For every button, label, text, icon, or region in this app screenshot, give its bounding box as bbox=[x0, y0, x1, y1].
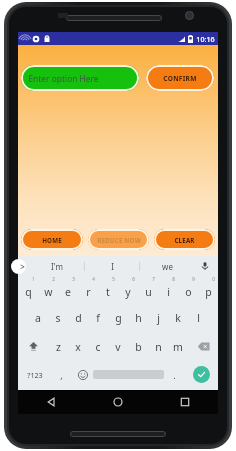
staticText: e bbox=[65, 285, 71, 299]
staticText: y bbox=[125, 285, 131, 299]
button[interactable]: b bbox=[128, 332, 148, 361]
staticText: g bbox=[115, 311, 122, 325]
button[interactable]: y bbox=[118, 276, 138, 304]
staticText: CONFIRM bbox=[163, 74, 197, 83]
staticText: w bbox=[44, 285, 53, 299]
button[interactable]: REDUCE NOW bbox=[88, 229, 149, 250]
staticText: 2 bbox=[52, 276, 55, 282]
staticText: x bbox=[75, 340, 81, 354]
button[interactable]: CLEAR bbox=[154, 229, 215, 250]
staticText: u bbox=[145, 285, 152, 299]
staticText: HOME bbox=[42, 236, 62, 244]
staticText: CLEAR bbox=[174, 236, 195, 244]
staticText: h bbox=[135, 311, 142, 325]
button[interactable]: h bbox=[128, 304, 148, 332]
button[interactable]: Shift bbox=[18, 332, 48, 361]
button[interactable]: r bbox=[78, 276, 98, 304]
staticText: , bbox=[60, 369, 63, 381]
button[interactable]: Voice input bbox=[194, 256, 216, 276]
staticText: z bbox=[56, 340, 61, 354]
staticText: p bbox=[205, 285, 212, 299]
button[interactable]: we bbox=[140, 256, 194, 276]
staticText: 1 bbox=[32, 276, 35, 282]
button[interactable]: f bbox=[88, 304, 108, 332]
button[interactable]: v bbox=[108, 332, 128, 361]
button[interactable]: n bbox=[148, 332, 168, 361]
staticText: b bbox=[135, 340, 142, 354]
button[interactable]: HOME bbox=[21, 229, 83, 250]
button[interactable]: z bbox=[48, 332, 68, 361]
staticText: t bbox=[106, 285, 110, 299]
staticText: d bbox=[75, 311, 82, 325]
staticText: I bbox=[111, 261, 114, 272]
button[interactable]: Recents bbox=[151, 390, 218, 414]
staticText: r bbox=[86, 285, 91, 299]
button[interactable]: c bbox=[88, 332, 108, 361]
button[interactable]: d bbox=[68, 304, 88, 332]
button[interactable]: Space bbox=[93, 366, 164, 383]
staticText: c bbox=[95, 340, 101, 354]
staticText: Enter option Here bbox=[28, 73, 99, 84]
staticText: ?123 bbox=[27, 370, 43, 380]
staticText: 6 bbox=[132, 276, 135, 282]
button[interactable]: j bbox=[148, 304, 168, 332]
staticText: I'm bbox=[51, 261, 63, 272]
button[interactable]: Back bbox=[18, 390, 84, 414]
staticText: 7 bbox=[152, 276, 155, 282]
button[interactable]: ?123 bbox=[18, 361, 51, 388]
button[interactable]: w bbox=[38, 276, 58, 304]
staticText: 5 bbox=[112, 276, 115, 282]
button[interactable]: l bbox=[188, 304, 208, 332]
staticText: 9 bbox=[192, 276, 195, 282]
button[interactable]: , bbox=[51, 361, 72, 388]
staticText: > bbox=[20, 261, 25, 272]
staticText: s bbox=[55, 311, 61, 325]
button[interactable]: a bbox=[28, 304, 48, 332]
button[interactable]: . bbox=[164, 361, 185, 388]
staticText: a bbox=[35, 311, 41, 325]
staticText: n bbox=[155, 340, 162, 354]
button[interactable]: Enter bbox=[185, 361, 218, 388]
staticText: q bbox=[25, 285, 32, 299]
button[interactable]: g bbox=[108, 304, 128, 332]
staticText: 3 bbox=[72, 276, 75, 282]
button[interactable]: o bbox=[178, 276, 198, 304]
staticText: f bbox=[96, 311, 100, 325]
button[interactable]: CONFIRM bbox=[146, 65, 214, 91]
staticText: 4 bbox=[92, 276, 95, 282]
button[interactable]: s bbox=[48, 304, 68, 332]
staticText: m bbox=[173, 340, 183, 354]
button[interactable]: x bbox=[68, 332, 88, 361]
staticText: o bbox=[185, 285, 192, 299]
staticText: j bbox=[157, 311, 160, 325]
staticText: l bbox=[197, 311, 200, 325]
staticText: i bbox=[167, 285, 170, 299]
button[interactable]: I bbox=[85, 256, 139, 276]
staticText: k bbox=[175, 311, 181, 325]
button[interactable]: More suggestions bbox=[11, 259, 26, 274]
button[interactable]: u bbox=[138, 276, 158, 304]
staticText: we bbox=[162, 261, 173, 272]
staticText: REDUCE NOW bbox=[97, 236, 141, 244]
button[interactable]: q bbox=[18, 276, 38, 304]
button[interactable]: t bbox=[98, 276, 118, 304]
button[interactable]: Emoji bbox=[72, 361, 93, 388]
staticText: 8 bbox=[172, 276, 175, 282]
button[interactable]: Enter option Here bbox=[21, 65, 139, 91]
button[interactable]: I'm bbox=[30, 256, 84, 276]
button[interactable]: k bbox=[168, 304, 188, 332]
staticText: . bbox=[173, 369, 176, 381]
button[interactable]: p bbox=[198, 276, 218, 304]
staticText: 0 bbox=[212, 276, 215, 282]
staticText: v bbox=[115, 340, 121, 354]
staticText: 10:16 bbox=[196, 34, 215, 44]
button[interactable]: e bbox=[58, 276, 78, 304]
button[interactable]: i bbox=[158, 276, 178, 304]
button[interactable]: Home bbox=[84, 390, 151, 414]
button[interactable]: Backspace bbox=[188, 332, 218, 361]
button[interactable]: m bbox=[168, 332, 188, 361]
